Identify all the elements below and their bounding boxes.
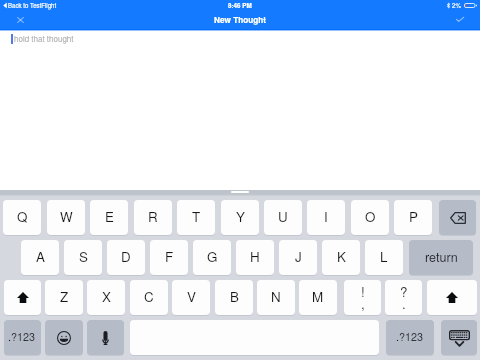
button[interactable]: W xyxy=(47,200,85,235)
button[interactable]: C xyxy=(130,280,168,315)
button[interactable]: Done xyxy=(450,11,470,27)
staticText: F xyxy=(165,247,174,266)
button[interactable]: return xyxy=(409,240,473,275)
staticText: V xyxy=(187,287,196,306)
staticText: .?123 xyxy=(396,329,424,344)
staticText: New Thought xyxy=(214,14,266,26)
button[interactable]: U xyxy=(264,200,302,235)
button[interactable]: .?123 xyxy=(4,320,41,355)
staticText: L xyxy=(380,247,388,266)
button[interactable]: F xyxy=(150,240,188,275)
button[interactable]: B xyxy=(215,280,253,315)
button[interactable]: K xyxy=(322,240,360,275)
staticText: J xyxy=(295,247,302,266)
staticText: I xyxy=(324,207,328,226)
staticText: . xyxy=(402,294,406,313)
button[interactable]: Shift xyxy=(427,280,477,315)
staticText: A xyxy=(36,247,45,266)
button[interactable]: ! xyxy=(344,280,381,315)
button[interactable]: R xyxy=(134,200,172,235)
staticText: U xyxy=(278,207,288,226)
staticText: ? xyxy=(400,282,408,301)
button[interactable]: Y xyxy=(221,200,259,235)
staticText: K xyxy=(337,247,346,266)
button[interactable]: Shift xyxy=(4,280,41,315)
staticText: H xyxy=(250,247,260,266)
button[interactable]: V xyxy=(172,280,210,315)
button[interactable]: P xyxy=(394,200,432,235)
button[interactable]: H xyxy=(236,240,274,275)
staticText: M xyxy=(312,287,324,306)
button[interactable]: Q xyxy=(3,200,41,235)
staticText: S xyxy=(79,247,88,266)
staticText: R xyxy=(148,207,158,226)
button[interactable]: Z xyxy=(45,280,83,315)
staticText: P xyxy=(409,207,418,226)
staticText: N xyxy=(271,287,281,306)
staticText: W xyxy=(60,207,73,226)
button[interactable]: L xyxy=(365,240,403,275)
staticText: Z xyxy=(60,287,69,306)
staticText: hold that thought xyxy=(14,33,74,44)
button[interactable]: M xyxy=(299,280,337,315)
staticText: 8:46 PM xyxy=(228,1,252,10)
staticText: G xyxy=(207,247,218,266)
staticText: 2% xyxy=(452,1,462,10)
staticText: Back to TestFlight xyxy=(8,1,57,10)
button[interactable]: .?123 xyxy=(386,320,434,355)
staticText: O xyxy=(365,207,376,226)
button[interactable]: Back to TestFlight xyxy=(3,1,57,10)
button[interactable]: ? xyxy=(385,280,422,315)
button[interactable]: X xyxy=(87,280,125,315)
button[interactable]: S xyxy=(64,240,102,275)
staticText: T xyxy=(192,207,201,226)
button[interactable]: E xyxy=(90,200,128,235)
button[interactable]: G xyxy=(193,240,231,275)
button[interactable]: Close xyxy=(11,11,29,28)
staticText: C xyxy=(144,287,154,306)
staticText: E xyxy=(105,207,114,226)
button[interactable]: Backspace xyxy=(439,200,476,235)
button[interactable]: Emoji xyxy=(45,320,83,355)
staticText: Y xyxy=(236,207,245,226)
button[interactable]: D xyxy=(107,240,145,275)
button[interactable]: T xyxy=(177,200,215,235)
button[interactable]: O xyxy=(351,200,389,235)
staticText: B xyxy=(230,287,239,306)
staticText: Q xyxy=(17,207,28,226)
button[interactable]: Hide keyboard xyxy=(441,320,477,355)
button[interactable]: Dictate xyxy=(87,320,124,355)
button[interactable]: A xyxy=(21,240,59,275)
staticText: X xyxy=(102,287,111,306)
staticText: D xyxy=(121,247,131,266)
staticText: , xyxy=(361,294,365,313)
button[interactable]: N xyxy=(257,280,295,315)
button[interactable]: J xyxy=(279,240,317,275)
button[interactable]: I xyxy=(307,200,345,235)
staticText: return xyxy=(425,248,458,266)
staticText: .?123 xyxy=(8,329,36,344)
staticText: ! xyxy=(361,282,365,301)
